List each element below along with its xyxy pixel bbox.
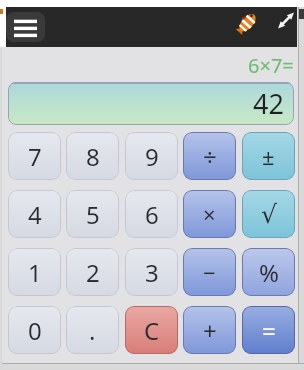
- button[interactable]: ×: [183, 190, 236, 238]
- staticText: =: [262, 314, 276, 347]
- button[interactable]: 8: [66, 132, 119, 180]
- staticText: 3: [145, 256, 159, 289]
- staticText: %: [259, 256, 279, 289]
- staticText: ±: [262, 141, 275, 171]
- staticText: 9: [145, 140, 159, 173]
- button[interactable]: −: [183, 248, 236, 296]
- button[interactable]: +: [183, 306, 236, 354]
- button[interactable]: 5: [66, 190, 119, 238]
- staticText: 4: [28, 198, 42, 231]
- button[interactable]: [6, 12, 45, 42]
- button[interactable]: =: [242, 306, 295, 354]
- staticText: 5: [86, 198, 100, 231]
- staticText: √: [261, 200, 277, 229]
- staticText: 7: [28, 140, 42, 173]
- button[interactable]: .: [66, 306, 119, 354]
- staticText: 1: [28, 256, 42, 289]
- button[interactable]: %: [242, 248, 295, 296]
- staticText: +: [203, 314, 217, 347]
- staticText: .: [89, 314, 96, 347]
- button[interactable]: 4: [8, 190, 61, 238]
- button[interactable]: [268, 7, 300, 37]
- button[interactable]: 9: [125, 132, 178, 180]
- staticText: 8: [86, 140, 100, 173]
- staticText: 42: [253, 85, 284, 122]
- button[interactable]: 1: [8, 248, 61, 296]
- button[interactable]: ÷: [183, 132, 236, 180]
- button[interactable]: ±: [242, 132, 295, 180]
- button[interactable]: 0: [8, 306, 61, 354]
- staticText: C: [144, 314, 160, 347]
- button[interactable]: 6: [125, 190, 178, 238]
- staticText: 6: [145, 198, 159, 231]
- staticText: ×: [203, 199, 216, 229]
- button[interactable]: 2: [66, 248, 119, 296]
- staticText: 6×7=: [248, 52, 294, 74]
- staticText: 2: [86, 256, 100, 289]
- button[interactable]: 7: [8, 132, 61, 180]
- staticText: ÷: [203, 140, 217, 173]
- button[interactable]: C: [125, 306, 178, 354]
- button[interactable]: √: [242, 190, 295, 238]
- staticText: 0: [28, 314, 42, 347]
- staticText: −: [203, 257, 216, 287]
- button[interactable]: 3: [125, 248, 178, 296]
